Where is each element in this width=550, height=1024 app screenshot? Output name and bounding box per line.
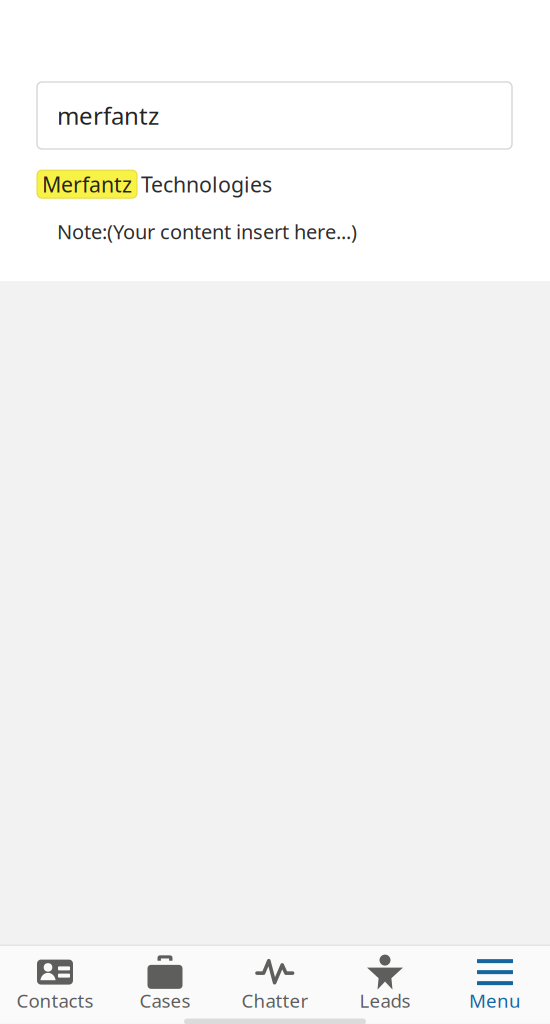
staticText: Menu [469, 988, 521, 1013]
button[interactable]: Menu [440, 946, 550, 1012]
staticText: Note:(Your content insert here...) [57, 218, 357, 245]
staticText: Chatter [241, 988, 308, 1013]
staticText: Contacts [16, 988, 93, 1013]
staticText: merfantz [57, 100, 159, 131]
staticText: Merfantz [42, 170, 132, 198]
button[interactable]: Leads [330, 946, 440, 1012]
staticText: Cases [139, 988, 190, 1013]
staticText: Leads [359, 988, 410, 1013]
button[interactable]: Contacts [0, 946, 110, 1012]
button[interactable]: merfantz [37, 82, 512, 149]
staticText: Technologies [141, 170, 272, 198]
button[interactable]: Cases [110, 946, 220, 1012]
button[interactable]: Chatter [220, 946, 330, 1012]
